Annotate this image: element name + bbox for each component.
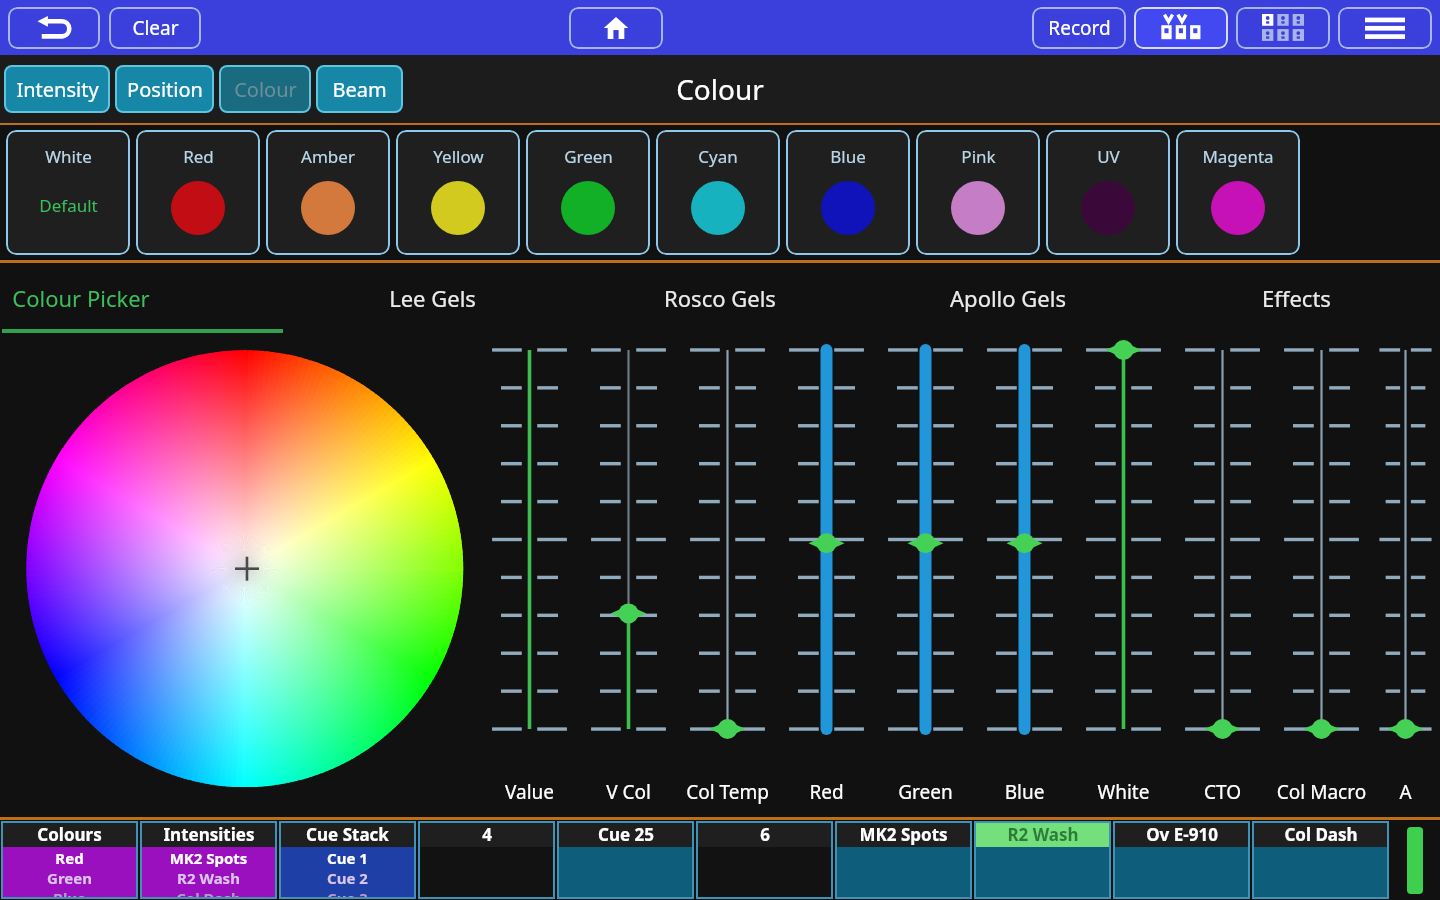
staticText: Lee Gels [389, 283, 476, 313]
button[interactable]: Amber [266, 130, 390, 255]
staticText: R2 Wash [1007, 823, 1079, 846]
button[interactable]: Intensities [140, 821, 277, 899]
button[interactable]: V Col [579, 333, 678, 817]
staticText: 4 [482, 823, 492, 846]
button[interactable]: R2 Wash [974, 821, 1111, 899]
staticText: Colours [37, 823, 102, 846]
button[interactable]: Home [569, 7, 663, 49]
staticText: Cue 3 [279, 888, 416, 899]
staticText: Value [480, 779, 579, 805]
staticText: UV [1097, 145, 1120, 168]
staticText: 6 [760, 823, 770, 846]
staticText: Ov E-910 [1146, 823, 1218, 846]
staticText: Pink [961, 145, 996, 168]
button[interactable]: Value [480, 333, 579, 817]
staticText: Intensities [163, 823, 255, 846]
button[interactable]: Pink [916, 130, 1040, 255]
staticText: White [1074, 779, 1173, 805]
staticText: Cue Stack [306, 823, 389, 846]
staticText: Blue [975, 779, 1074, 805]
button[interactable]: Cue 25 [557, 821, 694, 899]
staticText: Cue 2 [279, 868, 416, 888]
staticText: Red [777, 779, 876, 805]
staticText: Intensity [16, 76, 99, 103]
button[interactable]: MK2 Spots [835, 821, 972, 899]
button[interactable]: Position [115, 65, 214, 113]
staticText: Magenta [1202, 145, 1274, 168]
button[interactable]: CTO [1173, 333, 1272, 817]
button[interactable]: Master fader [1407, 827, 1423, 894]
button[interactable]: UV [1046, 130, 1170, 255]
button[interactable]: Red [136, 130, 260, 255]
staticText: Col Dash [1284, 823, 1358, 846]
staticText: White [45, 145, 92, 168]
staticText: Colour [676, 70, 764, 108]
button[interactable]: Grid [1236, 7, 1330, 49]
button[interactable]: Yellow [396, 130, 520, 255]
staticText: Green [1, 868, 138, 888]
button[interactable]: 4 [418, 821, 555, 899]
button[interactable]: A [1371, 333, 1440, 817]
button[interactable]: Cyan [656, 130, 780, 255]
staticText: Green [564, 145, 613, 168]
button[interactable]: Colours [1, 821, 138, 899]
staticText: Cue 25 [598, 823, 654, 846]
button[interactable]: Apollo Gels [864, 263, 1152, 333]
button[interactable]: Cue Stack [279, 821, 416, 899]
staticText: Col Macro [1272, 779, 1371, 805]
button[interactable]: Intensity [4, 65, 110, 113]
staticText: MK2 Spots [859, 823, 948, 846]
staticText: V Col [579, 779, 678, 805]
button[interactable]: Lee Gels [288, 263, 576, 333]
button[interactable]: Clear [109, 7, 201, 49]
staticText: CTO [1173, 779, 1272, 805]
staticText: Record [1048, 15, 1111, 41]
staticText: Colour [234, 76, 297, 103]
staticText: Blue [830, 145, 866, 168]
staticText: Beam [332, 76, 387, 103]
button[interactable]: Red [777, 333, 876, 817]
staticText: Apollo Gels [950, 283, 1066, 313]
button[interactable]: Menu [1338, 7, 1432, 49]
staticText: Position [127, 76, 203, 103]
staticText: MK2 Spots [140, 848, 277, 868]
button[interactable]: Blue [786, 130, 910, 255]
staticText: Amber [301, 145, 355, 168]
button[interactable]: Record [1032, 7, 1126, 49]
button[interactable]: Col Temp [678, 333, 777, 817]
staticText: Blue [1, 888, 138, 899]
button[interactable]: Effects [1152, 263, 1440, 333]
staticText: Col Temp [678, 779, 777, 805]
button[interactable]: Colour [219, 65, 311, 113]
staticText: Clear [132, 15, 179, 41]
staticText: Effects [1262, 283, 1331, 313]
button[interactable]: Col Dash [1252, 821, 1389, 899]
staticText: Colour Picker [12, 283, 150, 313]
button[interactable]: Fixtures [1134, 7, 1228, 49]
button[interactable]: Col Macro [1272, 333, 1371, 817]
staticText: R2 Wash [140, 868, 277, 888]
button[interactable]: Beam [316, 65, 403, 113]
staticText: Yellow [433, 145, 484, 168]
staticText: Cyan [698, 145, 738, 168]
button[interactable]: Undo [8, 7, 100, 49]
staticText: Green [876, 779, 975, 805]
button[interactable]: Colour Picker [0, 263, 288, 333]
button[interactable]: Magenta [1176, 130, 1300, 255]
staticText: Col Dash [140, 888, 277, 899]
staticText: Red [183, 145, 214, 168]
button[interactable]: 6 [696, 821, 833, 899]
button[interactable]: Ov E-910 [1113, 821, 1250, 899]
button[interactable]: White [1074, 333, 1173, 817]
button[interactable]: White [6, 130, 130, 255]
button[interactable]: Blue [975, 333, 1074, 817]
staticText: Rosco Gels [664, 283, 776, 313]
staticText: Default [39, 194, 98, 217]
button[interactable]: Green [876, 333, 975, 817]
button[interactable]: Green [526, 130, 650, 255]
staticText: Red [1, 848, 138, 868]
staticText: A [1371, 779, 1440, 805]
button[interactable]: Rosco Gels [576, 263, 864, 333]
staticText: Cue 1 [279, 848, 416, 868]
